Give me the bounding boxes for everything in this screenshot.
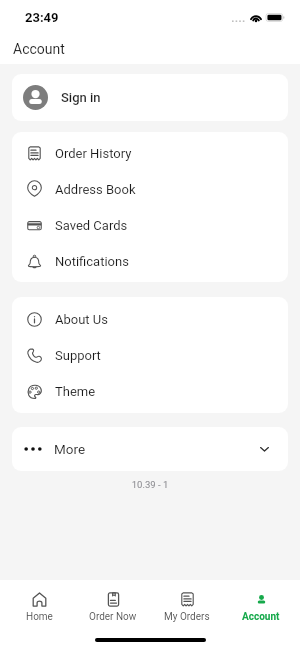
staticText: Order History: [55, 146, 132, 161]
staticText: My Orders: [164, 611, 210, 623]
staticText: Notifications: [55, 254, 129, 269]
staticText: Order Now: [89, 611, 137, 623]
button[interactable]: Account: [226, 580, 296, 625]
button[interactable]: Order History: [12, 135, 288, 171]
staticText: About Us: [55, 312, 108, 327]
button[interactable]: Home: [4, 580, 74, 625]
button[interactable]: About Us: [12, 301, 288, 337]
staticText: Account: [13, 41, 65, 57]
staticText: 10.39 - 1: [0, 479, 300, 490]
staticText: Support: [55, 348, 101, 363]
staticText: 23:49: [25, 10, 59, 25]
button[interactable]: Sign in: [12, 74, 288, 121]
staticText: Theme: [55, 384, 96, 399]
button[interactable]: Order Now: [78, 580, 148, 625]
button[interactable]: Address Book: [12, 171, 288, 207]
button[interactable]: Saved Cards: [12, 207, 288, 243]
button[interactable]: Support: [12, 337, 288, 373]
staticText: Home: [26, 611, 53, 623]
button[interactable]: Notifications: [12, 243, 288, 279]
staticText: Saved Cards: [55, 218, 128, 233]
staticText: Address Book: [55, 182, 136, 197]
button[interactable]: More: [12, 427, 288, 471]
staticText: Account: [242, 611, 280, 623]
button[interactable]: Theme: [12, 373, 288, 409]
staticText: More: [54, 441, 86, 457]
button[interactable]: My Orders: [152, 580, 222, 625]
staticText: Sign in: [61, 90, 101, 105]
